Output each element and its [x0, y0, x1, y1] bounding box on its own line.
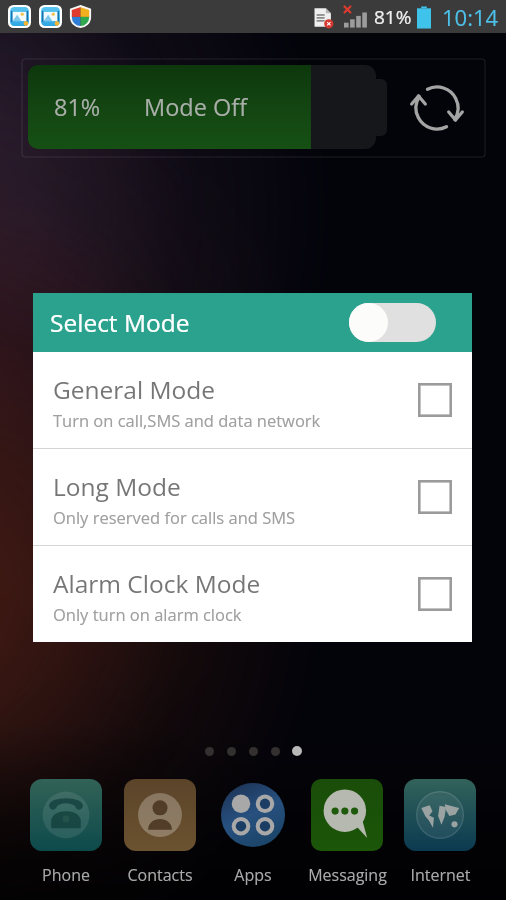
- staticText: Turn on call,SMS and data network: [53, 409, 321, 431]
- button[interactable]: Apps: [208, 779, 298, 886]
- staticText: Messaging: [308, 864, 387, 886]
- staticText: Contacts: [127, 864, 193, 886]
- staticText: Mode Off: [144, 91, 248, 123]
- button[interactable]: Contacts: [115, 779, 205, 886]
- staticText: Only reserved for calls and SMS: [53, 506, 296, 528]
- button[interactable]: Long Mode: [33, 449, 472, 545]
- button[interactable]: General Mode: [33, 352, 472, 448]
- staticText: 81%: [374, 4, 412, 30]
- staticText: Select Mode: [50, 306, 190, 339]
- staticText: Phone: [42, 864, 90, 886]
- staticText: 81%: [54, 91, 101, 123]
- staticText: General Mode: [53, 373, 216, 406]
- button[interactable]: Select Mode: [33, 293, 472, 352]
- button[interactable]: Refresh battery: [390, 59, 484, 157]
- button[interactable]: Internet: [395, 779, 485, 886]
- staticText: Long Mode: [53, 470, 181, 503]
- staticText: Apps: [234, 864, 272, 886]
- staticText: Internet: [410, 864, 471, 886]
- button[interactable]: Alarm Clock Mode: [33, 546, 472, 642]
- button[interactable]: Messaging: [302, 779, 392, 886]
- staticText: Alarm Clock Mode: [53, 567, 261, 600]
- button[interactable]: Enable mode: [349, 303, 436, 342]
- staticText: 10:14: [442, 2, 499, 32]
- button[interactable]: Phone: [21, 779, 111, 886]
- staticText: Only turn on alarm clock: [53, 603, 242, 625]
